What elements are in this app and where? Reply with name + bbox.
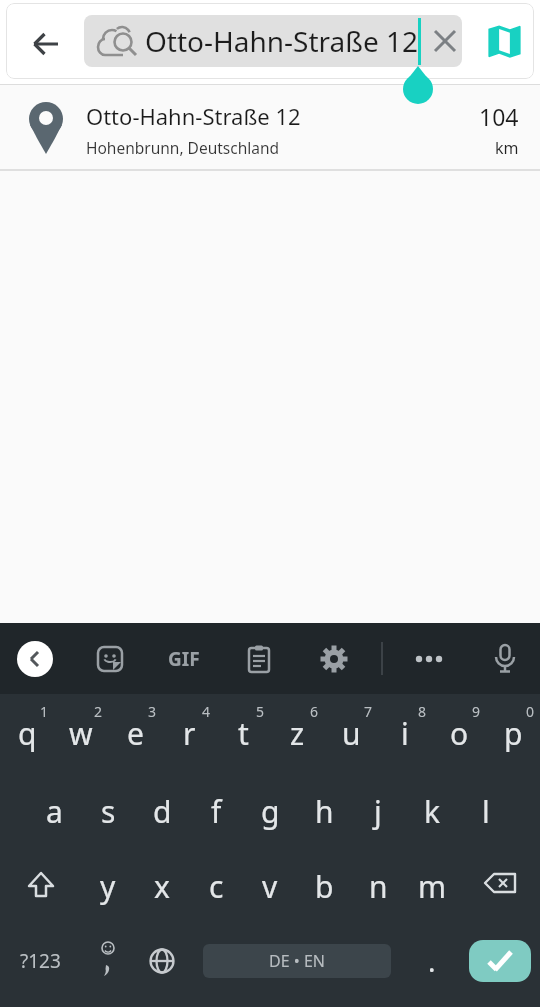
- staticText: GIF: [168, 646, 200, 672]
- button[interactable]: GIF: [154, 623, 214, 694]
- staticText: u: [342, 713, 361, 754]
- button[interactable]: [459, 922, 540, 1000]
- button[interactable]: j: [351, 772, 405, 850]
- button[interactable]: v: [243, 847, 297, 925]
- button[interactable]: Otto-Hahn-Straße 12: [84, 15, 462, 67]
- button[interactable]: r: [162, 694, 216, 772]
- button[interactable]: [20, 18, 72, 70]
- button[interactable]: o: [432, 694, 486, 772]
- button[interactable]: f: [189, 772, 243, 850]
- staticText: 104: [479, 101, 519, 132]
- staticText: a: [46, 791, 63, 832]
- button[interactable]: [306, 623, 362, 694]
- button[interactable]: [17, 641, 53, 677]
- staticText: v: [262, 866, 278, 907]
- staticText: q: [18, 713, 37, 754]
- staticText: t: [238, 713, 249, 754]
- staticText: 5: [256, 702, 265, 721]
- button[interactable]: [401, 623, 457, 694]
- button[interactable]: p: [486, 694, 540, 772]
- button[interactable]: [459, 847, 540, 925]
- staticText: 7: [364, 702, 373, 721]
- staticText: p: [504, 713, 523, 754]
- button[interactable]: x: [135, 847, 189, 925]
- button[interactable]: g: [243, 772, 297, 850]
- staticText: x: [154, 866, 170, 907]
- button[interactable]: u: [324, 694, 378, 772]
- staticText: r: [183, 713, 196, 754]
- staticText: l: [482, 791, 490, 832]
- button[interactable]: e: [108, 694, 162, 772]
- staticText: 4: [202, 702, 211, 721]
- button[interactable]: h: [297, 772, 351, 850]
- staticText: h: [315, 791, 334, 832]
- button[interactable]: y: [81, 847, 135, 925]
- staticText: e: [127, 713, 144, 754]
- staticText: .: [428, 942, 436, 980]
- button[interactable]: c: [189, 847, 243, 925]
- staticText: Otto-Hahn-Straße 12: [86, 101, 301, 131]
- staticText: y: [100, 866, 116, 907]
- staticText: i: [401, 713, 409, 754]
- staticText: d: [153, 791, 172, 832]
- button[interactable]: w: [54, 694, 108, 772]
- button[interactable]: [82, 623, 138, 694]
- staticText: Otto-Hahn-Straße 12: [145, 22, 419, 60]
- button[interactable]: z: [270, 694, 324, 772]
- button[interactable]: t: [216, 694, 270, 772]
- button[interactable]: DE • EN: [189, 922, 405, 1000]
- button[interactable]: q: [0, 694, 54, 772]
- staticText: 2: [94, 702, 103, 721]
- staticText: 9: [472, 702, 481, 721]
- button[interactable]: [135, 922, 189, 1000]
- staticText: m: [418, 866, 447, 907]
- button[interactable]: n: [351, 847, 405, 925]
- staticText: 6: [310, 702, 319, 721]
- staticText: Hohenbrunn, Deutschland: [86, 137, 280, 158]
- button[interactable]: i: [378, 694, 432, 772]
- staticText: g: [261, 791, 280, 832]
- button[interactable]: a: [27, 772, 81, 850]
- staticText: b: [315, 866, 334, 907]
- staticText: w: [69, 713, 93, 754]
- button[interactable]: [479, 20, 529, 70]
- button[interactable]: d: [135, 772, 189, 850]
- staticText: s: [101, 791, 116, 832]
- button[interactable]: Otto-Hahn-Straße 12: [0, 85, 540, 170]
- staticText: j: [374, 791, 382, 832]
- staticText: n: [369, 866, 388, 907]
- button[interactable]: b: [297, 847, 351, 925]
- button[interactable]: [428, 25, 462, 57]
- button[interactable]: [0, 847, 81, 925]
- staticText: 1: [40, 702, 49, 721]
- staticText: 3: [148, 702, 157, 721]
- staticText: ?123: [20, 948, 61, 974]
- button[interactable]: .: [405, 922, 459, 1000]
- button[interactable]: m: [405, 847, 459, 925]
- button[interactable]: s: [81, 772, 135, 850]
- button[interactable]: [477, 623, 533, 694]
- staticText: DE • EN: [269, 950, 325, 972]
- staticText: o: [450, 713, 469, 754]
- staticText: k: [424, 791, 441, 832]
- staticText: c: [209, 866, 224, 907]
- button[interactable]: l: [459, 772, 513, 850]
- button[interactable]: [81, 922, 135, 1000]
- button[interactable]: [231, 623, 287, 694]
- button[interactable]: ?123: [0, 922, 81, 1000]
- staticText: 0: [526, 702, 535, 721]
- staticText: km: [495, 137, 519, 159]
- staticText: 8: [418, 702, 427, 721]
- staticText: z: [290, 713, 305, 754]
- button[interactable]: k: [405, 772, 459, 850]
- staticText: f: [211, 791, 222, 832]
